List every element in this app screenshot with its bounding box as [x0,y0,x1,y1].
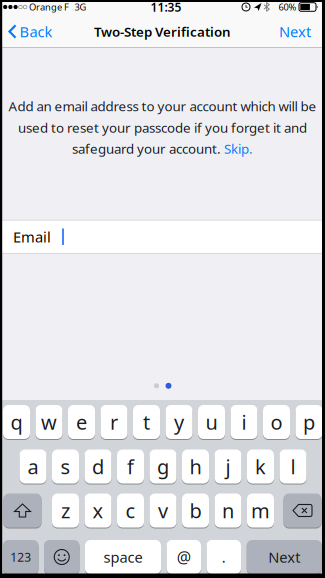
button[interactable]: j [214,449,241,484]
staticText: m [251,497,270,524]
staticText: Back [19,22,52,41]
staticText: used to reset your passcode if you forge… [18,119,307,136]
staticText: j [225,453,230,480]
button[interactable]: s [52,449,79,484]
staticText: a [27,453,38,480]
staticText: k [255,453,266,480]
staticText: t [143,409,150,435]
staticText: Add an email address to your account whi… [8,97,316,115]
staticText: h [189,453,201,480]
staticText: 60% [278,1,296,13]
staticText: o [270,409,282,435]
button[interactable]: l [279,449,306,484]
staticText: safeguard your account. [72,140,221,157]
button[interactable]: q [3,404,30,439]
button[interactable]: f [117,449,144,484]
staticText: i [241,409,246,435]
staticText: . [222,547,226,567]
button[interactable]: a [19,449,46,484]
staticText: y [174,409,184,435]
button[interactable]: 123 [3,539,38,574]
button[interactable]: h [182,449,209,484]
button[interactable]: m [247,493,274,528]
button[interactable]: p [295,404,322,439]
staticText: p [303,409,315,435]
button[interactable]: @ [166,539,201,574]
button[interactable]: Email [0,220,325,254]
button[interactable]: k [247,449,274,484]
staticText: Next [279,22,311,41]
button[interactable]: space [85,539,161,574]
staticText: q [10,409,22,435]
staticText: space [103,547,142,567]
button[interactable]: Skip. [224,140,253,157]
staticText: u [205,409,217,435]
staticText: e [76,409,87,435]
button[interactable]: w [35,404,62,439]
staticText: n [222,497,234,524]
button[interactable]: g [149,449,176,484]
button[interactable]: t [133,404,160,439]
staticText: Skip. [224,140,253,157]
button[interactable]: y [165,404,192,439]
button[interactable]: Next [247,539,322,574]
staticText: f [127,453,134,480]
button[interactable]: d [84,449,111,484]
staticText: 123 [10,549,31,565]
button[interactable]: Delete [283,493,321,528]
button[interactable]: r [100,404,127,439]
staticText: z [61,497,70,524]
staticText: l [290,453,295,480]
staticText: x [92,497,103,524]
button[interactable]: o [263,404,290,439]
staticText: v [158,497,168,524]
staticText: 11:35 [150,0,181,15]
staticText: g [157,453,169,480]
staticText: c [125,497,135,524]
staticText: @ [177,546,191,568]
staticText: Next [268,547,300,567]
button[interactable]: . [206,539,241,574]
button[interactable]: Back [3,16,55,46]
button[interactable]: c [117,493,144,528]
button[interactable]: Next [273,16,317,46]
button[interactable]: Emoji [44,539,79,574]
button[interactable]: x [84,493,111,528]
staticText: w [41,409,57,435]
button[interactable]: n [214,493,241,528]
staticText: s [60,453,70,480]
button[interactable]: e [68,404,95,439]
button[interactable]: u [198,404,225,439]
button[interactable]: b [182,493,209,528]
button[interactable]: i [230,404,257,439]
staticText: Email [13,227,51,246]
button[interactable]: z [52,493,79,528]
staticText: r [110,409,118,435]
button[interactable]: v [149,493,176,528]
staticText: d [92,453,104,480]
staticText: b [189,497,201,524]
button[interactable]: Shift [3,493,41,528]
staticText: Two-Step Verification [94,23,231,40]
staticText: 3G [74,1,86,13]
staticText: Orange F [29,1,69,13]
